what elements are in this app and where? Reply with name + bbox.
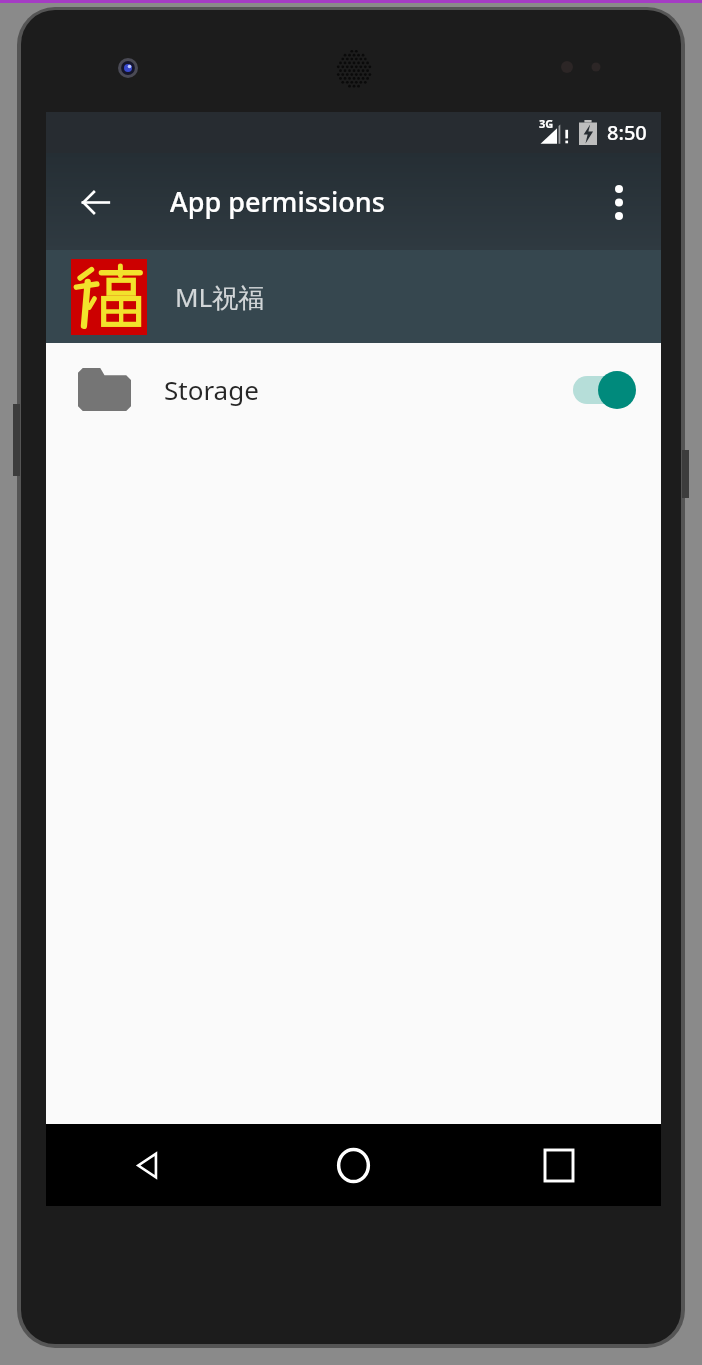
button[interactable]: Storage — [46, 343, 661, 436]
staticText: App permissions — [170, 183, 385, 220]
button[interactable]: More options — [592, 175, 646, 229]
button[interactable]: Recent apps — [456, 1124, 661, 1206]
staticText: 3G — [539, 116, 554, 131]
button[interactable]: ML祝福 — [46, 250, 661, 343]
button[interactable]: Back — [46, 1124, 251, 1206]
staticText: 8:50 — [607, 119, 647, 146]
staticText: Storage — [164, 372, 259, 407]
button[interactable]: Storage permission, on — [569, 365, 647, 415]
button[interactable]: Home — [251, 1124, 456, 1206]
button[interactable]: Back — [66, 173, 124, 231]
staticText: ML祝福 — [175, 279, 265, 315]
